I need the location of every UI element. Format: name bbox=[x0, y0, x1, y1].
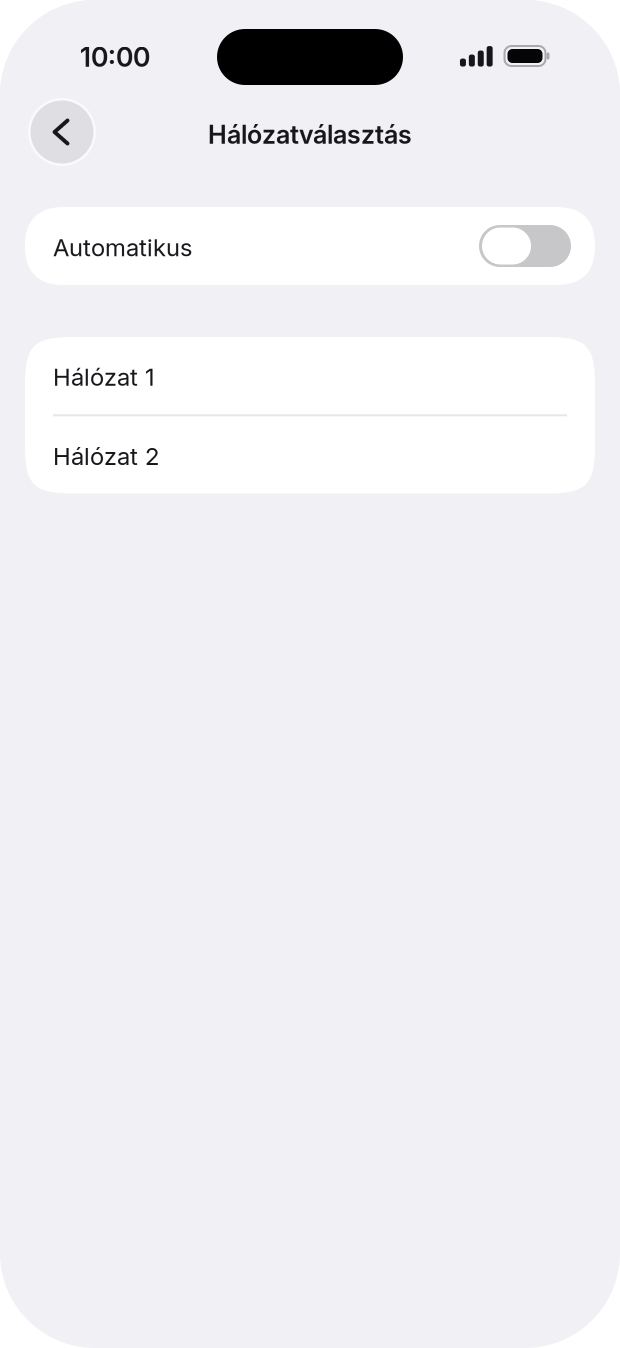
button[interactable]: Hálózat 2 bbox=[25, 416, 595, 493]
button[interactable]: Hálózat 1 bbox=[25, 337, 595, 414]
staticText: Hálózatválasztás bbox=[208, 119, 412, 150]
staticText: Hálózat 1 bbox=[53, 363, 155, 392]
staticText: Automatikus bbox=[53, 233, 192, 262]
button[interactable]: Back bbox=[28, 98, 96, 166]
staticText: 10:00 bbox=[80, 41, 150, 73]
staticText: Hálózat 2 bbox=[53, 442, 159, 471]
button[interactable]: Automatikus bbox=[25, 207, 595, 285]
